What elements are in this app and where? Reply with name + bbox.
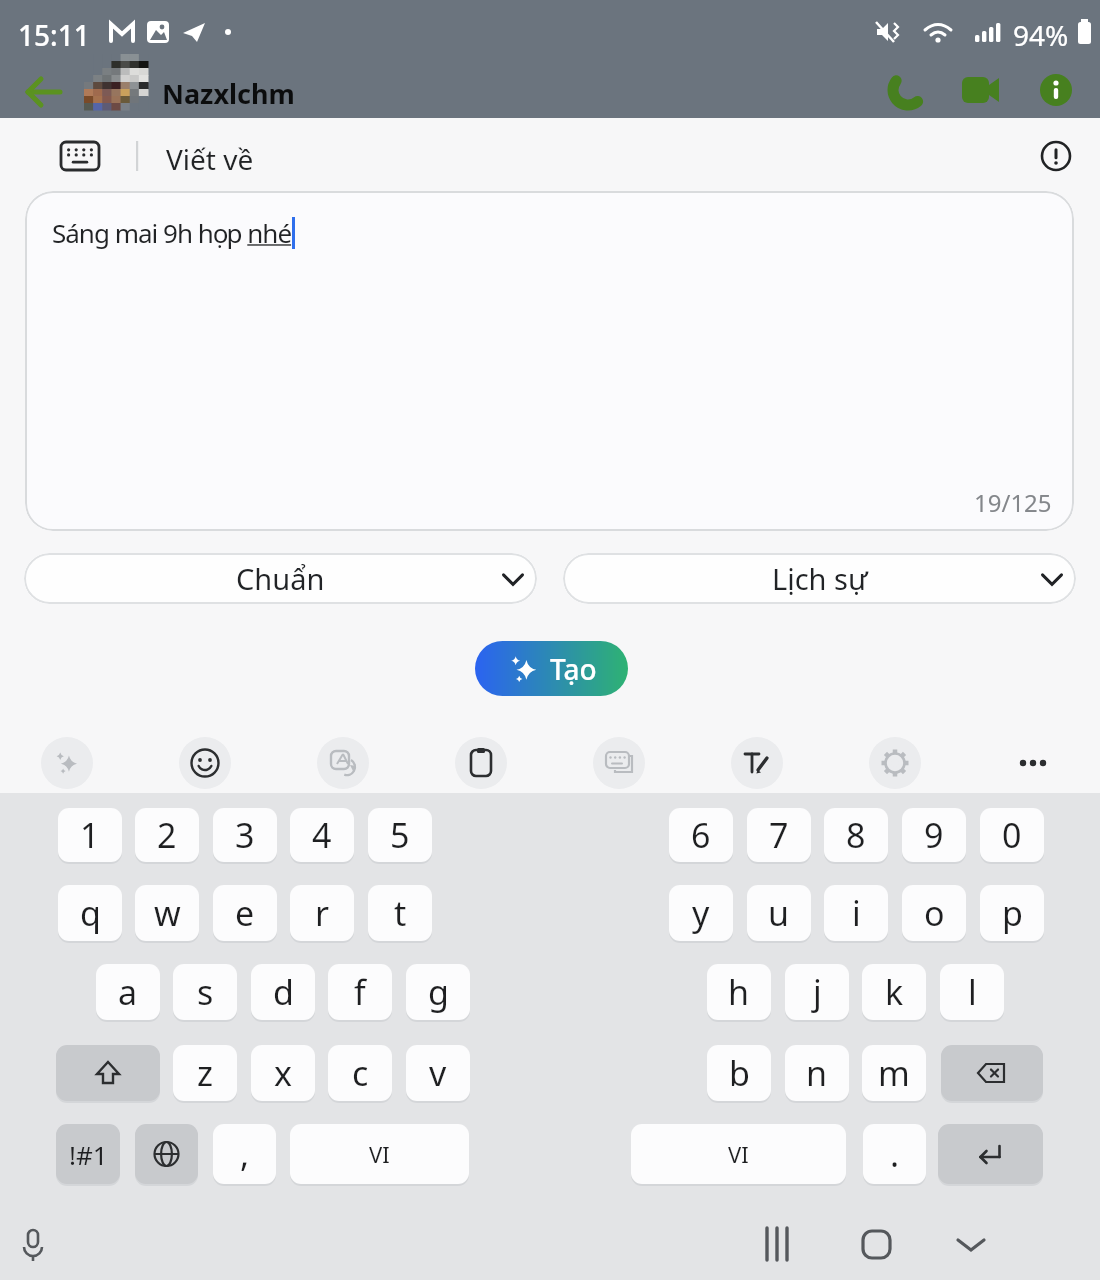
button[interactable]: s	[173, 964, 237, 1020]
staticText: s	[197, 969, 214, 1015]
button[interactable]: w	[135, 885, 199, 941]
button[interactable]: !#1	[56, 1124, 120, 1184]
staticText: f	[354, 969, 366, 1015]
button[interactable]: 3	[213, 808, 277, 862]
button[interactable]	[593, 737, 645, 789]
staticText: 3	[235, 812, 255, 858]
button[interactable]: VI	[631, 1124, 846, 1184]
staticText: c	[352, 1050, 369, 1096]
button[interactable]: a	[96, 964, 160, 1020]
button[interactable]: h	[707, 964, 771, 1020]
button[interactable]: u	[747, 885, 811, 941]
button[interactable]: j	[785, 964, 849, 1020]
staticText: 6	[691, 812, 711, 858]
staticText: k	[885, 969, 904, 1015]
button[interactable]: VI	[290, 1124, 469, 1184]
button[interactable]: t	[368, 885, 432, 941]
staticText: v	[429, 1050, 447, 1096]
button[interactable]	[56, 1045, 160, 1101]
staticText: Tạo	[550, 650, 597, 688]
staticText: b	[729, 1050, 750, 1096]
staticText: m	[878, 1050, 910, 1096]
button[interactable]	[12, 1222, 54, 1264]
button[interactable]	[869, 737, 921, 789]
staticText: 8	[846, 812, 866, 858]
button[interactable]	[755, 1220, 803, 1268]
staticText: e	[235, 890, 255, 936]
button[interactable]: x	[251, 1045, 315, 1101]
button[interactable]: 8	[824, 808, 888, 862]
button[interactable]	[853, 1220, 901, 1268]
button[interactable]: l	[940, 964, 1004, 1020]
button[interactable]	[1007, 737, 1059, 789]
button[interactable]: z	[173, 1045, 237, 1101]
staticText: u	[768, 890, 790, 936]
staticText: 4	[312, 812, 332, 858]
staticText: Sáng mai 9h họp nhé	[52, 215, 292, 250]
staticText: z	[197, 1050, 213, 1096]
button[interactable]: Sáng mai 9h họp nhé	[25, 191, 1074, 531]
button[interactable]	[20, 64, 72, 116]
button[interactable]: f	[328, 964, 392, 1020]
button[interactable]: 2	[135, 808, 199, 862]
button[interactable]: 5	[368, 808, 432, 862]
staticText: o	[924, 890, 945, 936]
button[interactable]: r	[290, 885, 354, 941]
button[interactable]	[731, 737, 783, 789]
button[interactable]: c	[328, 1045, 392, 1101]
staticText: 94%	[1013, 16, 1069, 54]
staticText: d	[273, 969, 294, 1015]
button[interactable]	[179, 737, 231, 789]
button[interactable]	[884, 64, 932, 116]
button[interactable]: g	[406, 964, 470, 1020]
button[interactable]: b	[707, 1045, 771, 1101]
button[interactable]: i	[824, 885, 888, 941]
staticText: 15:11	[18, 16, 90, 54]
button[interactable]	[1034, 134, 1078, 178]
staticText: .	[890, 1131, 900, 1177]
button[interactable]	[317, 737, 369, 789]
staticText: n	[806, 1050, 828, 1096]
button[interactable]: ,	[213, 1124, 276, 1184]
staticText: VI	[728, 1139, 749, 1169]
button[interactable]: 0	[980, 808, 1044, 862]
staticText: q	[80, 890, 101, 936]
button[interactable]	[956, 64, 1006, 116]
button[interactable]	[41, 737, 93, 789]
button[interactable]: y	[669, 885, 733, 941]
button[interactable]: d	[251, 964, 315, 1020]
button[interactable]: o	[902, 885, 966, 941]
button[interactable]	[135, 1124, 198, 1184]
staticText: y	[692, 890, 710, 936]
staticText: Lịch sự	[772, 559, 868, 598]
staticText: 9	[924, 812, 944, 858]
button[interactable]	[56, 132, 104, 180]
button[interactable]: k	[862, 964, 926, 1020]
button[interactable]	[938, 1124, 1043, 1184]
button[interactable]: e	[213, 885, 277, 941]
button[interactable]	[947, 1220, 995, 1268]
staticText: p	[1002, 890, 1023, 936]
staticText: !#1	[69, 1137, 108, 1172]
button[interactable]	[941, 1045, 1043, 1101]
button[interactable]: 1	[58, 808, 122, 862]
button[interactable]: 4	[290, 808, 354, 862]
button[interactable]: Lịch sự	[563, 553, 1076, 604]
button[interactable]	[1032, 64, 1080, 116]
staticText: Nazxlchm	[162, 75, 295, 112]
button[interactable]: 9	[902, 808, 966, 862]
staticText: i	[852, 890, 861, 936]
button[interactable]: Chuẩn	[24, 553, 537, 604]
button[interactable]: 6	[669, 808, 733, 862]
button[interactable]: n	[785, 1045, 849, 1101]
button[interactable]: p	[980, 885, 1044, 941]
button[interactable]: v	[406, 1045, 470, 1101]
button[interactable]	[455, 737, 507, 789]
button[interactable]: m	[862, 1045, 926, 1101]
button[interactable]: .	[863, 1124, 926, 1184]
staticText: w	[154, 890, 181, 936]
staticText: ,	[240, 1131, 250, 1177]
button[interactable]: Tạo	[475, 641, 628, 696]
button[interactable]: q	[58, 885, 122, 941]
button[interactable]: 7	[747, 808, 811, 862]
